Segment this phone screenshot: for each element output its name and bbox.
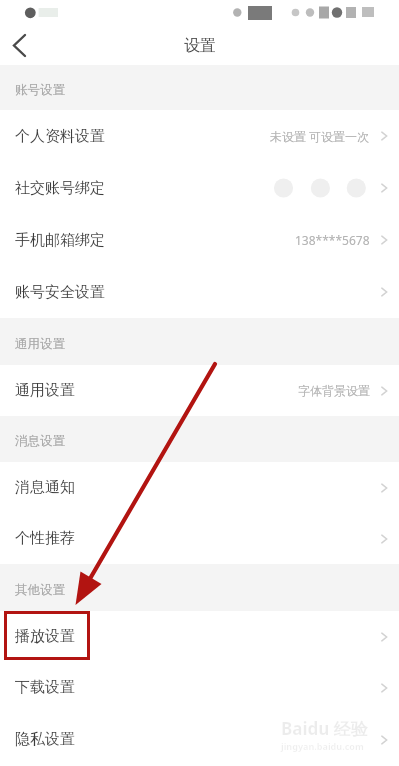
button[interactable]: 手机邮箱绑定 — [0, 214, 399, 266]
staticText: 账号设置 — [15, 82, 65, 98]
button[interactable]: Back — [0, 26, 40, 65]
staticText: 138****5678 — [295, 232, 370, 248]
staticText: 未设置 可设置一次 — [270, 128, 370, 144]
button[interactable]: 通用设置 — [0, 365, 399, 416]
staticText: 手机邮箱绑定 — [15, 231, 105, 250]
button[interactable]: 下载设置 — [0, 662, 399, 713]
staticText: 账号安全设置 — [15, 283, 105, 302]
button[interactable]: 社交账号绑定 — [0, 162, 399, 214]
button[interactable]: 播放设置 — [0, 611, 399, 662]
staticText: 消息通知 — [15, 478, 75, 497]
button[interactable]: 隐私设置 — [0, 713, 399, 766]
staticText: 个人资料设置 — [15, 127, 105, 146]
staticText: 播放设置 — [15, 627, 75, 646]
staticText: 其他设置 — [15, 582, 65, 598]
button[interactable]: 账号安全设置 — [0, 266, 399, 318]
staticText: 下载设置 — [15, 678, 75, 697]
staticText: 隐私设置 — [15, 730, 75, 749]
button[interactable]: 个性推荐 — [0, 513, 399, 564]
button[interactable]: 消息通知 — [0, 462, 399, 513]
staticText: 社交账号绑定 — [15, 179, 105, 198]
button[interactable]: 个人资料设置 — [0, 110, 399, 162]
staticText: jingyan.baidu.com — [281, 740, 364, 752]
staticText: 通用设置 — [15, 381, 75, 400]
staticText: 字体背景设置 — [298, 383, 370, 398]
staticText: Baidu 经验 — [281, 717, 368, 740]
staticText: 设置 — [184, 36, 216, 56]
staticText: 通用设置 — [15, 336, 65, 352]
staticText: 消息设置 — [15, 433, 65, 449]
staticText: 个性推荐 — [15, 529, 75, 548]
